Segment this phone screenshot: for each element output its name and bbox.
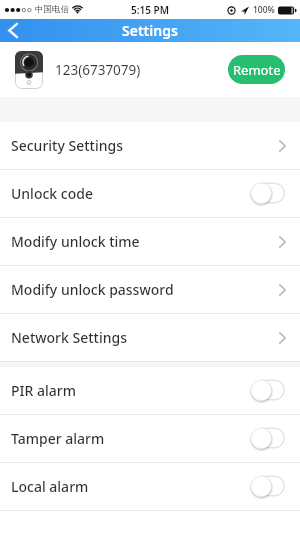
- button[interactable]: Modify unlock time: [0, 218, 300, 266]
- staticText: Modify unlock password: [11, 280, 174, 299]
- button[interactable]: Modify unlock password: [0, 266, 300, 314]
- staticText: Tamper alarm: [11, 429, 105, 448]
- staticText: Modify unlock time: [11, 232, 140, 251]
- button[interactable]: Security Settings: [0, 122, 300, 170]
- button[interactable]: Tamper alarm: [0, 415, 300, 463]
- button[interactable]: [250, 379, 286, 403]
- button[interactable]: Remote: [228, 55, 285, 84]
- staticText: 123(6737079): [55, 61, 141, 79]
- staticText: Unlock code: [11, 184, 93, 203]
- staticText: 中国电信: [35, 4, 69, 15]
- staticText: Security Settings: [11, 136, 123, 155]
- button[interactable]: Unlock code: [0, 170, 300, 218]
- button[interactable]: [250, 475, 286, 499]
- button[interactable]: Network Settings: [0, 314, 300, 362]
- button[interactable]: [250, 427, 286, 451]
- staticText: Remote: [233, 61, 281, 79]
- staticText: 100%: [253, 4, 275, 16]
- staticText: 5:15 PM: [131, 3, 169, 17]
- button[interactable]: [250, 182, 286, 206]
- staticText: Settings: [122, 21, 178, 40]
- staticText: Local alarm: [11, 477, 89, 496]
- staticText: PIR alarm: [11, 381, 76, 400]
- button[interactable]: Local alarm: [0, 463, 300, 511]
- staticText: Network Settings: [11, 328, 128, 347]
- button[interactable]: [8, 23, 18, 38]
- button[interactable]: PIR alarm: [0, 367, 300, 415]
